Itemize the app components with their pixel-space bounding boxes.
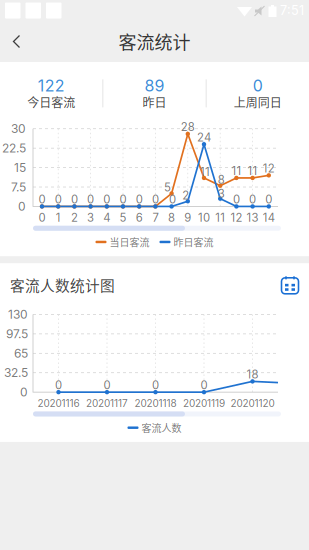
staticText: 9 — [184, 211, 191, 225]
button[interactable]: Select date — [281, 276, 299, 294]
staticText: 昨日 — [142, 93, 166, 111]
staticText: 20201120 — [230, 397, 274, 409]
staticText: 0 — [200, 378, 207, 392]
staticText: 7:51 — [280, 3, 304, 18]
staticText: 0 — [20, 385, 28, 399]
staticText: 20201116 — [37, 397, 79, 409]
staticText: 20201117 — [86, 397, 128, 409]
staticText: 0 — [38, 211, 45, 225]
staticText: 0 — [152, 193, 159, 206]
staticText: 11 — [200, 165, 210, 179]
staticText: 5 — [119, 211, 126, 225]
staticText: 0 — [103, 378, 110, 392]
staticText: 0 — [169, 193, 176, 206]
staticText: 3 — [87, 211, 94, 225]
staticText: 10 — [198, 211, 210, 225]
staticText: 8 — [218, 173, 225, 187]
staticText: 12 — [263, 161, 275, 175]
staticText: 0 — [18, 199, 26, 214]
staticText: 32.5 — [4, 365, 28, 380]
staticText: 6 — [136, 211, 143, 225]
staticText: 0 — [233, 193, 240, 206]
staticText: 客流统计 — [118, 28, 190, 55]
button[interactable]: Back — [0, 22, 33, 60]
staticText: 0 — [152, 378, 159, 392]
staticText: 122 — [38, 76, 65, 95]
staticText: 0 — [249, 193, 256, 206]
staticText: 2 — [71, 211, 78, 225]
staticText: 130 — [8, 307, 28, 322]
staticText: 5 — [164, 181, 171, 194]
staticText: 30 — [11, 121, 26, 136]
staticText: 0 — [103, 193, 110, 206]
staticText: 13 — [247, 211, 259, 225]
staticText: 客流人数统计图 — [10, 274, 115, 295]
staticText: 0 — [38, 193, 45, 206]
staticText: 0 — [265, 193, 272, 206]
staticText: 20201119 — [183, 397, 225, 409]
staticText: 1 — [56, 211, 61, 225]
staticText: 2 — [182, 188, 189, 202]
staticText: 0 — [55, 193, 62, 206]
staticText: 客流人数 — [141, 420, 181, 435]
staticText: 20201118 — [134, 397, 176, 409]
staticText: 65 — [14, 346, 28, 360]
staticText: 昨日客流 — [173, 235, 213, 249]
staticText: 97.5 — [6, 327, 28, 341]
staticText: 8 — [168, 211, 175, 225]
staticText: 0 — [253, 76, 263, 95]
staticText: 14 — [263, 211, 275, 225]
staticText: 0 — [136, 193, 143, 206]
staticText: 今日客流 — [27, 93, 75, 111]
staticText: 0 — [55, 378, 62, 392]
staticText: 4 — [103, 211, 110, 225]
staticText: 24 — [197, 130, 211, 144]
staticText: 7 — [152, 211, 158, 225]
staticText: 3 — [218, 187, 225, 200]
staticText: 11 — [248, 164, 258, 178]
staticText: 28 — [181, 120, 195, 134]
staticText: 11 — [215, 211, 225, 225]
staticText: 0 — [71, 193, 78, 206]
staticText: 0 — [119, 193, 126, 206]
staticText: 11 — [231, 164, 241, 178]
staticText: 12 — [230, 211, 242, 225]
staticText: 上周同日 — [234, 93, 282, 111]
staticText: 22.5 — [2, 141, 26, 155]
staticText: 18 — [246, 367, 258, 381]
staticText: 当日客流 — [109, 235, 149, 249]
staticText: 0 — [87, 193, 94, 206]
staticText: 7.5 — [11, 180, 26, 194]
staticText: 89 — [144, 76, 164, 95]
staticText: 15 — [14, 160, 26, 175]
